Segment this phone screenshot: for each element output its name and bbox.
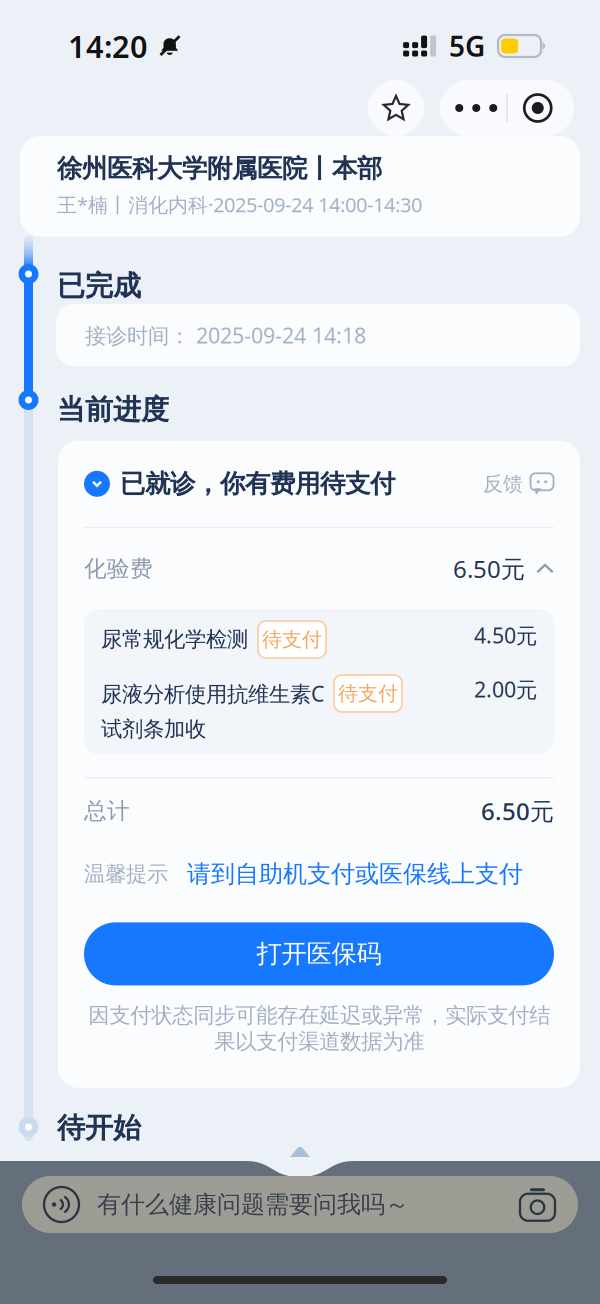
staticText: 当前进度 [57,392,169,427]
staticText: 温馨提示 [84,861,168,887]
staticText: 已就诊，你有费用待支付 [120,468,395,499]
staticText: 14:20 [68,26,148,66]
staticText: 5G [449,27,485,65]
staticText: 待开始 [57,1111,141,1145]
button[interactable]: 化验费 [58,528,580,609]
staticText: 待支付 [262,627,322,652]
button[interactable]: 更多 [440,80,574,136]
staticText: 4.50元 [474,621,537,649]
staticText: 待支付 [338,681,398,706]
staticText: 因支付状态同步可能存在延迟或异常，实际支付结果以支付渠道数据为准 [88,1002,550,1055]
staticText: 请到自助机支付或医保线上支付 [187,859,523,889]
staticText: 6.50元 [453,553,525,585]
staticText: 2.00元 [474,675,537,703]
staticText: 已完成 [57,269,141,303]
button[interactable]: 反馈 [483,471,554,496]
staticText: 6.50元 [481,795,554,827]
staticText: 有什么健康问题需要问我吗～ [97,1190,409,1219]
staticText: 试剂条加收 [101,716,206,742]
button[interactable]: 打开医保码 [84,922,554,985]
button[interactable]: 主屏幕 [153,1276,447,1284]
staticText: 总计 [84,797,130,825]
staticText: 尿常规化学检测 [101,626,248,653]
staticText: 化验费 [84,555,153,582]
staticText: 徐州医科大学附属医院丨本部 [57,153,382,184]
staticText: 接诊时间： 2025-09-24 14:18 [85,321,366,349]
staticText: 尿液分析使用抗维生素C [101,679,324,708]
button[interactable]: 收藏 [368,80,424,136]
button[interactable]: 有什么健康问题需要问我吗～ [22,1176,578,1233]
staticText: 王*楠丨消化内科·2025-09-24 14:00-14:30 [57,191,422,218]
staticText: 打开医保码 [256,938,381,969]
staticText: 反馈 [483,471,523,496]
